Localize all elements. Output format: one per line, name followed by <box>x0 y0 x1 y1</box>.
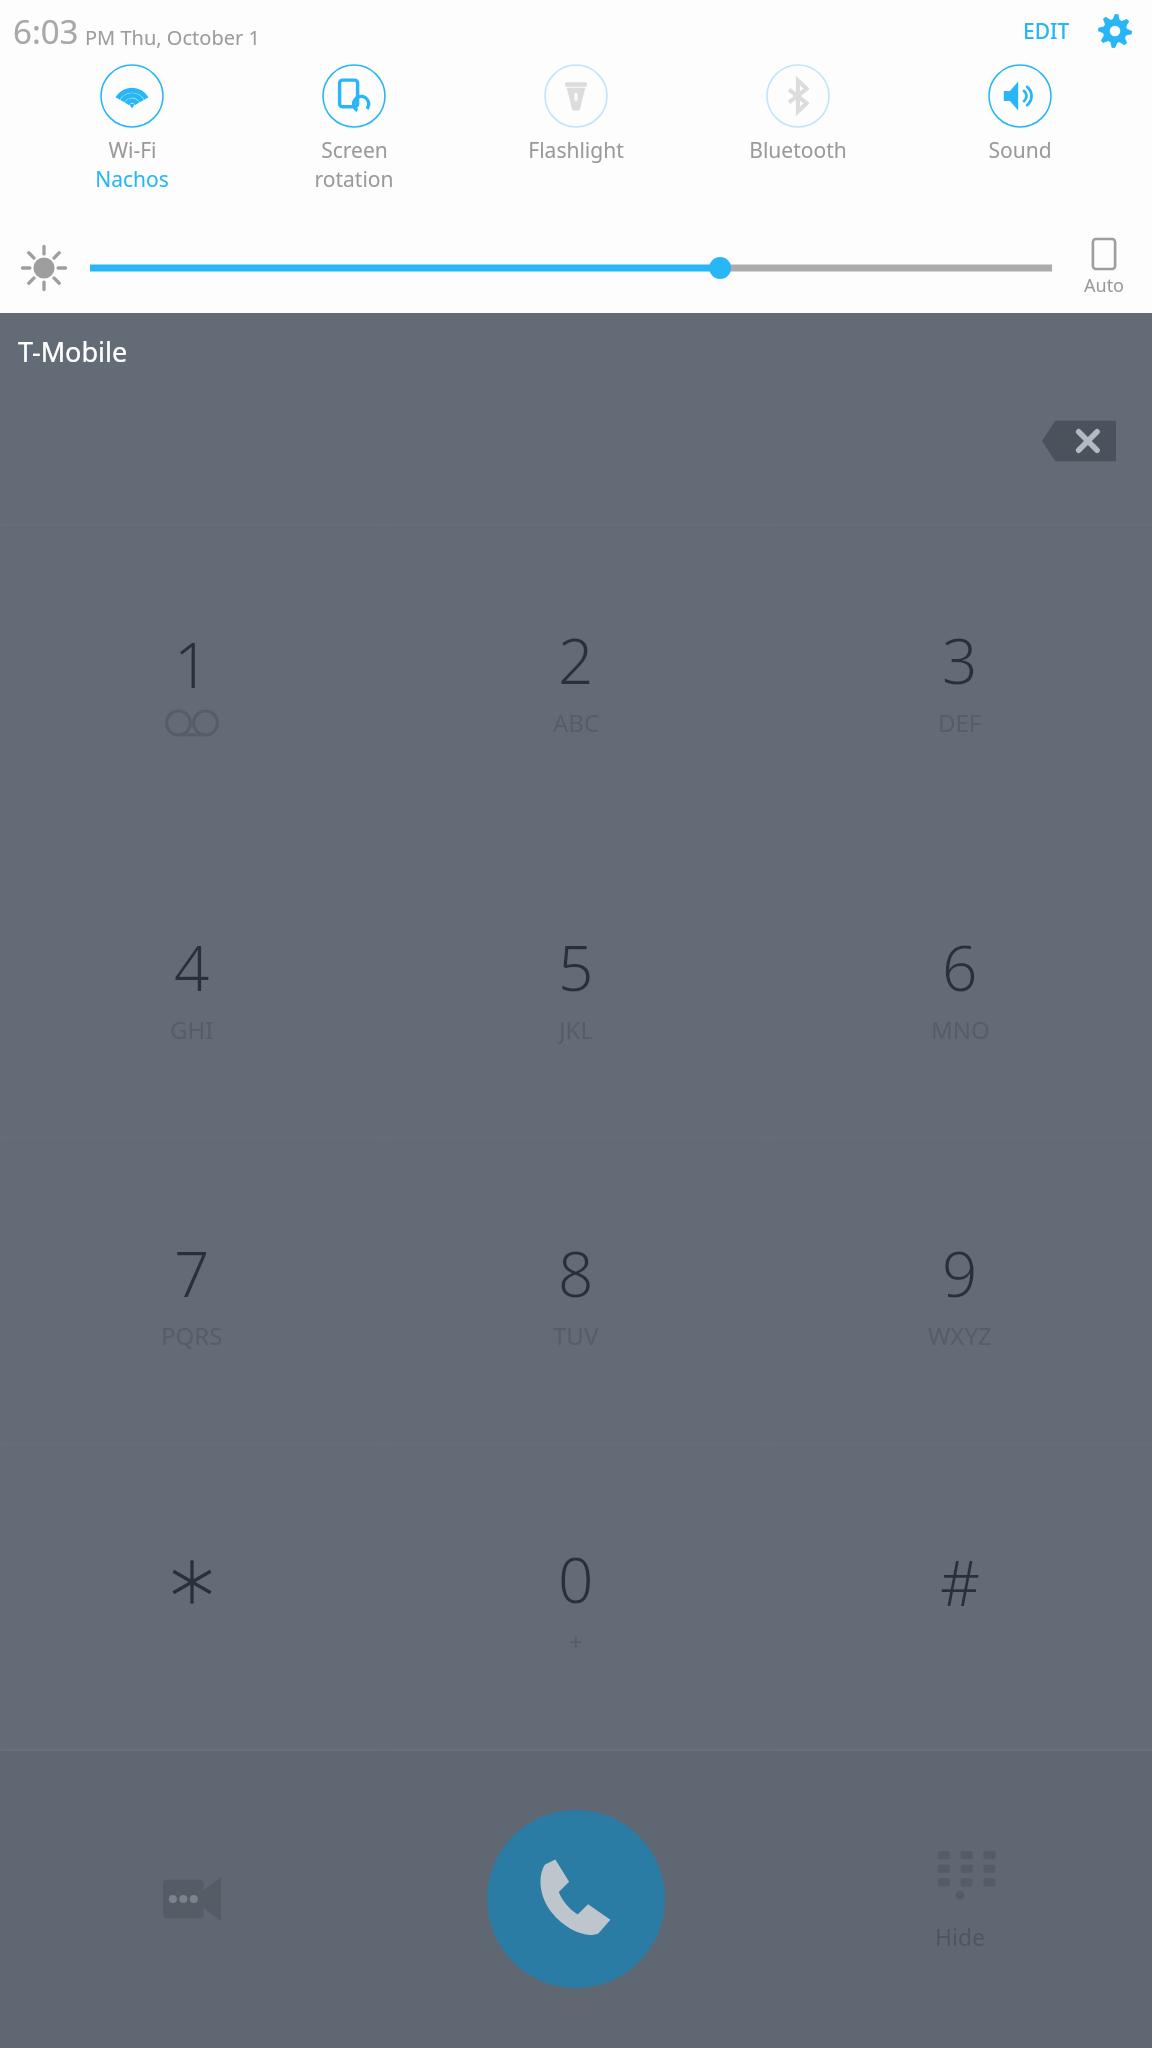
staticText: 0 <box>558 1537 594 1621</box>
staticText: GHI <box>170 1013 214 1046</box>
button[interactable]: Screen <box>264 64 444 194</box>
staticText: Sound <box>988 136 1052 165</box>
staticText: Hide <box>935 1921 986 1952</box>
button[interactable]: 8 <box>384 1138 768 1444</box>
button[interactable]: 4 <box>0 832 384 1138</box>
button[interactable]: 6 <box>768 832 1152 1138</box>
staticText: 8 <box>558 1231 594 1315</box>
staticText: 2 <box>558 618 594 702</box>
button[interactable]: 5 <box>384 832 768 1138</box>
button[interactable] <box>90 245 1052 291</box>
staticText: 7 <box>174 1231 210 1315</box>
staticText: ABC <box>553 706 600 739</box>
staticText: PQRS <box>161 1319 223 1352</box>
staticText: WXYZ <box>928 1319 992 1352</box>
staticText: Auto <box>1084 273 1125 298</box>
staticText: 6:03 <box>13 9 79 54</box>
staticText: rotation <box>314 165 394 194</box>
staticText: # <box>940 1540 981 1624</box>
staticText: 9 <box>942 1231 978 1315</box>
button[interactable]: EDIT <box>1015 11 1078 52</box>
staticText: 1 <box>174 622 210 706</box>
staticText: 4 <box>174 925 210 1009</box>
staticText: Flashlight <box>528 136 624 165</box>
staticText: TUV <box>553 1319 599 1352</box>
button[interactable]: 9 <box>768 1138 1152 1444</box>
staticText: EDIT <box>1023 17 1070 46</box>
button[interactable]: 3 <box>768 525 1152 832</box>
button[interactable]: Sound <box>930 64 1110 165</box>
button[interactable]: Auto <box>1068 239 1140 298</box>
staticText: Bluetooth <box>749 136 847 165</box>
button[interactable]: Brightness <box>12 236 76 300</box>
staticText: DEF <box>938 706 982 739</box>
button[interactable]: Flashlight <box>486 64 666 165</box>
button[interactable]: Bluetooth <box>708 64 888 165</box>
button[interactable]: Wi-Fi <box>42 64 222 194</box>
staticText: Screen <box>321 136 388 165</box>
staticText: 6 <box>942 925 978 1009</box>
button[interactable]: 0 <box>384 1444 768 1750</box>
staticText: T-Mobile <box>18 333 128 370</box>
staticText: 3 <box>942 618 978 702</box>
button[interactable] <box>0 1444 384 1750</box>
staticText: + <box>569 1625 583 1658</box>
staticText: Wi-Fi <box>108 136 157 165</box>
button[interactable]: Backspace <box>1036 412 1122 470</box>
staticText: Nachos <box>95 165 169 194</box>
staticText: 5 <box>558 925 594 1009</box>
button[interactable]: Settings <box>1092 8 1138 54</box>
button[interactable]: # <box>768 1444 1152 1750</box>
staticText: JKL <box>559 1013 593 1046</box>
staticText: PM Thu, October 1 <box>85 24 260 51</box>
staticText: MNO <box>931 1013 990 1046</box>
button[interactable]: Call <box>384 1750 768 2048</box>
